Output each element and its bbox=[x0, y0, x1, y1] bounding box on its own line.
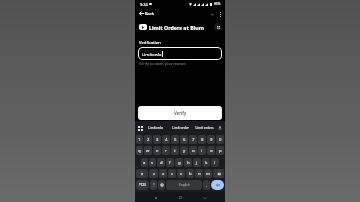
staticText: Limit orders bbox=[195, 126, 214, 130]
button[interactable]: b bbox=[186, 169, 194, 178]
button[interactable]: 5 bbox=[171, 135, 179, 144]
staticText: Verify to claim your reward bbox=[139, 61, 186, 66]
staticText: Limitorda bbox=[148, 126, 163, 130]
staticText: a bbox=[143, 160, 146, 166]
button[interactable]: 4 bbox=[162, 135, 170, 144]
staticText: i bbox=[201, 148, 203, 154]
staticText: y bbox=[183, 148, 186, 154]
button[interactable]: More options bbox=[217, 11, 223, 17]
button[interactable]: v bbox=[177, 169, 185, 178]
button[interactable]: Home bbox=[176, 193, 185, 202]
staticText: r bbox=[165, 148, 167, 154]
staticText: k bbox=[205, 160, 208, 166]
button[interactable]: x bbox=[159, 169, 167, 178]
staticText: ?123 bbox=[139, 183, 146, 187]
button[interactable]: q bbox=[136, 146, 143, 155]
button[interactable]: Emoji bbox=[150, 180, 157, 190]
button[interactable]: Keyboard settings bbox=[158, 180, 165, 190]
staticText: e bbox=[156, 148, 159, 154]
staticText: u bbox=[192, 148, 195, 154]
staticText: 8 bbox=[201, 137, 204, 143]
button[interactable]: ?123 bbox=[136, 180, 149, 190]
staticText: Back bbox=[145, 11, 155, 16]
button[interactable]: English bbox=[166, 180, 202, 190]
button[interactable]: 6 bbox=[180, 135, 188, 144]
button[interactable]: j bbox=[193, 158, 201, 167]
button[interactable]: p bbox=[216, 146, 224, 155]
staticText: 7 bbox=[192, 137, 195, 143]
button[interactable]: d bbox=[157, 158, 165, 167]
button[interactable]: l bbox=[211, 158, 219, 167]
staticText: 6 bbox=[183, 137, 186, 143]
staticText: Verify bbox=[174, 110, 187, 116]
staticText: 9 bbox=[210, 137, 213, 143]
button[interactable]: f bbox=[166, 158, 174, 167]
staticText: 3 bbox=[156, 137, 159, 143]
staticText: n bbox=[198, 171, 201, 177]
button[interactable]: Limitorda bbox=[143, 121, 168, 134]
button[interactable]: 8 bbox=[198, 135, 206, 144]
staticText: 5 bbox=[174, 137, 177, 143]
button[interactable]: Shift bbox=[136, 169, 148, 178]
button[interactable]: Toolbar bbox=[137, 125, 143, 131]
button[interactable]: Limit orders bbox=[192, 121, 216, 134]
staticText: . bbox=[206, 183, 208, 188]
button[interactable]: 7 bbox=[189, 135, 197, 144]
staticText: s bbox=[151, 160, 154, 166]
button[interactable]: z bbox=[149, 169, 158, 178]
button[interactable]: t bbox=[171, 146, 179, 155]
button[interactable]: Voice input bbox=[216, 124, 223, 131]
staticText: g bbox=[178, 160, 181, 166]
staticText: m bbox=[206, 171, 210, 177]
staticText: 4 bbox=[165, 137, 168, 143]
button[interactable]: Limit order bbox=[168, 121, 192, 134]
button[interactable]: Limitorda bbox=[138, 47, 222, 60]
button[interactable]: n bbox=[195, 169, 203, 178]
staticText: l bbox=[214, 160, 216, 166]
button[interactable]: u bbox=[189, 146, 197, 155]
staticText: 60% bbox=[214, 2, 221, 6]
staticText: 9:24 bbox=[140, 2, 148, 7]
staticText: 0 bbox=[219, 137, 222, 143]
staticText: c bbox=[171, 171, 174, 177]
staticText: 1 bbox=[138, 137, 141, 143]
staticText: b bbox=[189, 171, 192, 177]
staticText: x bbox=[162, 171, 165, 177]
button[interactable]: o bbox=[207, 146, 215, 155]
button[interactable]: Back bbox=[200, 193, 209, 202]
staticText: Limit Orders at Blum bbox=[149, 24, 204, 31]
staticText: English bbox=[179, 183, 190, 187]
button[interactable]: e bbox=[153, 146, 161, 155]
button[interactable]: k bbox=[202, 158, 210, 167]
button[interactable]: Enter bbox=[211, 180, 224, 190]
button[interactable]: y bbox=[180, 146, 188, 155]
staticText: o bbox=[210, 148, 213, 154]
button[interactable]: Recents bbox=[151, 193, 160, 202]
button[interactable]: 0 bbox=[216, 135, 224, 144]
button[interactable]: 2 bbox=[144, 135, 152, 144]
staticText: f bbox=[169, 160, 171, 166]
button[interactable]: . bbox=[203, 180, 210, 190]
staticText: j bbox=[196, 160, 198, 166]
staticText: h bbox=[187, 160, 190, 166]
button[interactable]: i bbox=[198, 146, 206, 155]
button[interactable]: s bbox=[149, 158, 156, 167]
staticText: p bbox=[219, 148, 222, 154]
button[interactable]: Back bbox=[139, 9, 155, 18]
button[interactable]: g bbox=[175, 158, 183, 167]
button[interactable]: Backspace bbox=[213, 169, 224, 178]
staticText: Limitorda bbox=[142, 51, 162, 57]
button[interactable]: c bbox=[168, 169, 176, 178]
button[interactable]: 9 bbox=[207, 135, 215, 144]
button[interactable]: Verify bbox=[138, 106, 222, 120]
button[interactable]: h bbox=[184, 158, 192, 167]
button[interactable]: r bbox=[162, 146, 170, 155]
staticText: Limit order bbox=[172, 126, 189, 130]
button[interactable]: Share bbox=[214, 23, 222, 31]
button[interactable]: a bbox=[141, 158, 148, 167]
button[interactable]: w bbox=[144, 146, 152, 155]
button[interactable]: m bbox=[204, 169, 212, 178]
button[interactable]: 3 bbox=[153, 135, 161, 144]
button[interactable]: Expand bbox=[209, 11, 215, 17]
button[interactable]: 1 bbox=[136, 135, 143, 144]
